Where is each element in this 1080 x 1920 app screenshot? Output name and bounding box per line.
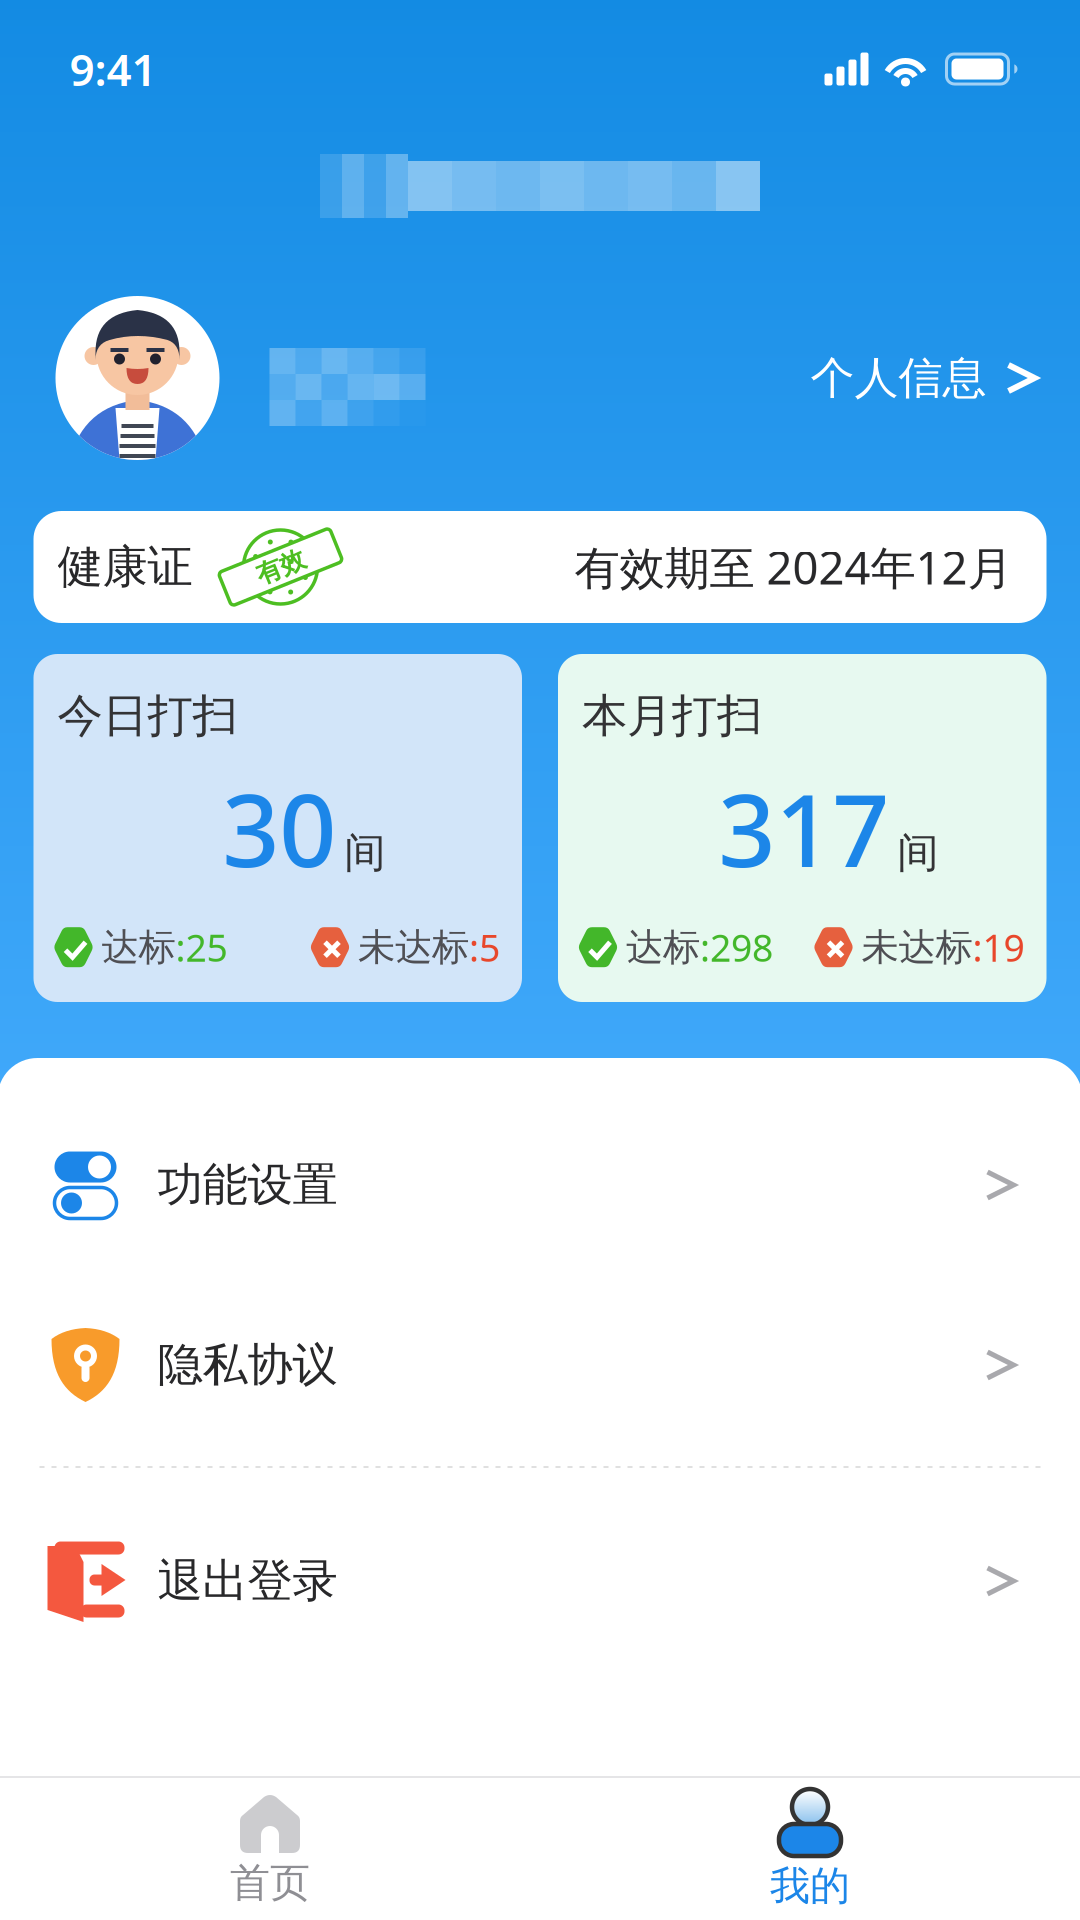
staticText: 达标 [626,924,700,970]
button[interactable]: 健康证 [0,511,1080,623]
staticText: :25 [175,922,227,972]
staticText: 间 [344,828,385,878]
staticText: :298 [700,922,773,972]
button[interactable]: 我的 [540,1790,1080,1908]
staticText: 有效期至 2024年12月 [574,537,1012,597]
staticText: :19 [972,922,1024,972]
staticText: 未达标 [861,924,972,970]
staticText: 本月打扫 [582,688,762,744]
button[interactable]: 首页 [0,1793,540,1905]
staticText: 个人信息 [810,351,986,405]
staticText: 健康证 [57,539,192,595]
button[interactable]: 功能设置 [0,1150,1080,1220]
staticText: 今日打扫 [57,688,237,744]
button[interactable]: 隐私协议 [0,1326,1080,1404]
staticText: :5 [469,922,500,972]
staticText: 隐私协议 [157,1337,337,1393]
staticText: 9:41 [69,40,156,98]
staticText: 首页 [230,1858,310,1907]
staticText: 功能设置 [157,1157,337,1213]
staticText: 间 [897,828,938,878]
staticText: 未达标 [358,924,469,970]
staticText: 317 [718,762,889,894]
staticText: 有效 [255,551,305,582]
staticText: 我的 [770,1861,850,1910]
staticText: 达标 [101,924,175,970]
staticText: 退出登录 [157,1553,337,1609]
button[interactable]: 个人信息 [810,351,1080,405]
button[interactable]: 退出登录 [0,1538,1080,1624]
staticText: 30 [222,762,336,894]
